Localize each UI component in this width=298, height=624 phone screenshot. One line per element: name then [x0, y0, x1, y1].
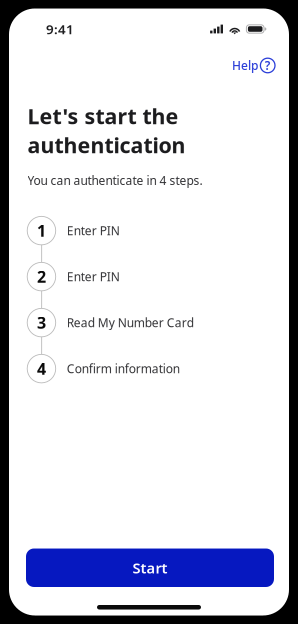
- button[interactable]: Help: [227, 52, 280, 78]
- button[interactable]: Start: [26, 548, 274, 587]
- staticText: Enter PIN: [67, 223, 120, 239]
- staticText: 4: [37, 358, 46, 379]
- staticText: ?: [265, 57, 271, 73]
- staticText: You can authenticate in 4 steps.: [27, 172, 202, 188]
- staticText: Let's start the: [27, 102, 178, 130]
- staticText: Confirm information: [67, 361, 180, 377]
- staticText: Read My Number Card: [67, 315, 194, 331]
- staticText: authentication: [27, 131, 185, 159]
- staticText: Enter PIN: [67, 269, 120, 285]
- staticText: Start: [132, 558, 167, 577]
- staticText: 3: [37, 312, 46, 333]
- staticText: 1: [37, 220, 46, 241]
- staticText: 2: [37, 266, 46, 287]
- staticText: Help: [232, 57, 258, 73]
- staticText: 9:41: [46, 20, 74, 38]
